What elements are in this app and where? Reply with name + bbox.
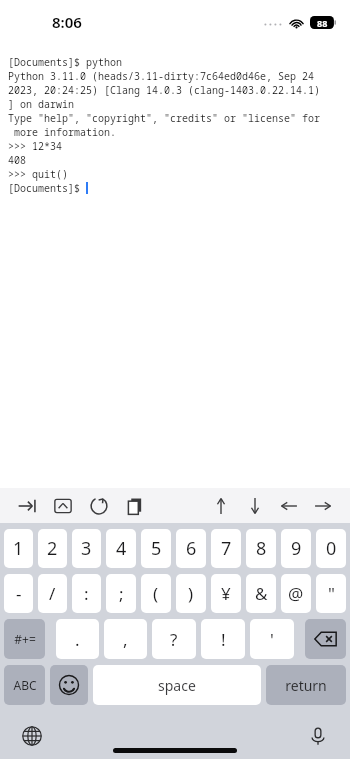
button[interactable]: Up (206, 491, 236, 521)
staticText: " (328, 582, 335, 605)
button[interactable]: ( (141, 574, 171, 613)
button[interactable]: / (38, 574, 67, 613)
button[interactable]: Paste (120, 491, 150, 521)
staticText: 0 (326, 536, 337, 561)
button[interactable]: ' (250, 619, 294, 659)
button[interactable]: Dictation (302, 720, 334, 752)
button[interactable]: ABC (4, 665, 45, 705)
button[interactable]: ! (201, 619, 245, 659)
button[interactable]: - (4, 574, 33, 613)
button[interactable]: , (104, 619, 147, 659)
staticText: 4 (116, 536, 127, 561)
button[interactable]: ; (106, 574, 136, 613)
button[interactable]: Left (274, 491, 304, 521)
staticText: ABC (13, 677, 37, 693)
button[interactable]: ) (176, 574, 206, 613)
button[interactable]: Down (240, 491, 270, 521)
button[interactable]: Control (48, 491, 78, 521)
button[interactable]: 1 (4, 529, 33, 568)
button[interactable]: #+= (4, 619, 45, 659)
button[interactable]: & (246, 574, 276, 613)
staticText: Type "help", "copyright", "credits" or "… (8, 111, 320, 125)
button[interactable]: return (266, 665, 346, 705)
staticText: / (49, 582, 56, 605)
staticText: #+= (14, 631, 36, 647)
staticText: - (16, 582, 22, 605)
staticText: ! (221, 628, 226, 651)
staticText: 5 (151, 536, 162, 561)
button[interactable]: 6 (176, 529, 206, 568)
button[interactable]: 4 (106, 529, 136, 568)
button[interactable]: 3 (72, 529, 101, 568)
staticText: ? (170, 628, 178, 651)
button[interactable]: : (72, 574, 101, 613)
button[interactable]: Emoji (50, 665, 88, 705)
button[interactable]: 7 (211, 529, 241, 568)
staticText: 8 (256, 536, 267, 561)
button[interactable]: Change keyboard (16, 720, 48, 752)
button[interactable]: 5 (141, 529, 171, 568)
button[interactable]: ¥ (211, 574, 241, 613)
button[interactable]: Backspace (305, 619, 346, 659)
staticText: 88 (317, 17, 328, 29)
staticText: ] on darwin (8, 97, 74, 111)
staticText: space (158, 676, 196, 695)
button[interactable]: Undo (84, 491, 114, 521)
staticText: 1 (13, 536, 24, 561)
staticText: 9 (291, 536, 302, 561)
staticText: 8:06 (52, 12, 82, 32)
staticText: 3 (81, 536, 92, 561)
button[interactable]: space (93, 665, 261, 705)
staticText: : (84, 582, 89, 605)
staticText: >>> quit() (8, 167, 68, 181)
staticText: [Documents]$ (8, 181, 86, 195)
staticText: & (255, 582, 268, 605)
staticText: Python 3.11.0 (heads/3.11-dirty:7c64ed0d… (8, 69, 314, 83)
staticText: more information. (8, 125, 116, 139)
staticText: ; (119, 582, 124, 605)
staticText: 2023, 20:24:25) [Clang 14.0.3 (clang-140… (8, 83, 320, 97)
button[interactable]: . (56, 619, 99, 659)
button[interactable]: ? (152, 619, 196, 659)
button[interactable]: 0 (316, 529, 346, 568)
staticText: ) (188, 582, 194, 605)
button[interactable]: Tab (12, 491, 42, 521)
staticText: ( (153, 582, 159, 605)
button[interactable]: 9 (281, 529, 311, 568)
staticText: @ (288, 582, 304, 605)
staticText: 408 (8, 153, 26, 167)
staticText: ¥ (221, 582, 231, 605)
staticText: ' (270, 628, 274, 651)
staticText: . (75, 628, 80, 651)
button[interactable]: Right (308, 491, 338, 521)
staticText: 2 (47, 536, 58, 561)
staticText: >>> 12*34 (8, 139, 62, 153)
button[interactable]: 8 (246, 529, 276, 568)
button[interactable]: @ (281, 574, 311, 613)
button[interactable]: " (316, 574, 346, 613)
staticText: return (285, 676, 327, 695)
button[interactable]: 2 (38, 529, 67, 568)
staticText: , (123, 628, 128, 651)
staticText: 7 (221, 536, 232, 561)
staticText: [Documents]$ python (8, 55, 122, 69)
staticText: 6 (186, 536, 197, 561)
